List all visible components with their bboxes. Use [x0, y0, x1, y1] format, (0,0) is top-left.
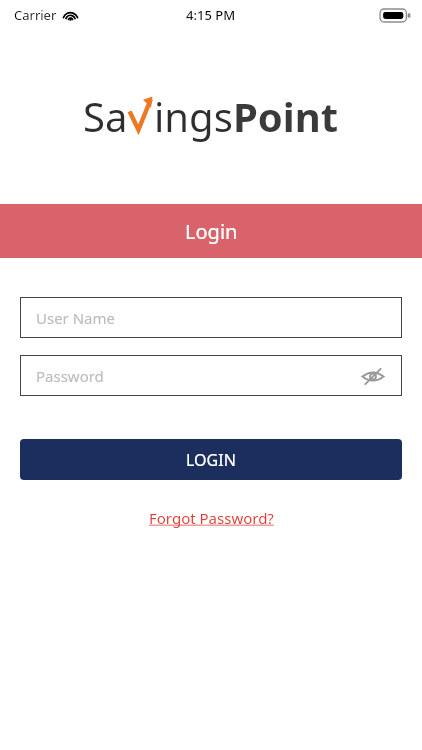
- staticText: Login: [185, 218, 238, 245]
- staticText: Sa: [83, 89, 128, 143]
- staticText: Forgot Password?: [149, 508, 274, 528]
- staticText: Point: [233, 89, 339, 143]
- staticText: ings: [154, 89, 233, 143]
- staticText: Carrier: [14, 6, 57, 24]
- staticText: 4:15 PM: [186, 6, 236, 24]
- staticText: User Name: [36, 308, 386, 328]
- button[interactable]: Show password: [360, 363, 386, 389]
- button[interactable]: Forgot Password?: [143, 506, 280, 530]
- button[interactable]: LOGIN: [20, 439, 402, 480]
- button[interactable]: Password: [20, 355, 402, 396]
- staticText: LOGIN: [186, 449, 236, 471]
- button[interactable]: User Name: [20, 297, 402, 338]
- staticText: Password: [36, 366, 360, 386]
- button[interactable]: Login: [0, 204, 422, 258]
